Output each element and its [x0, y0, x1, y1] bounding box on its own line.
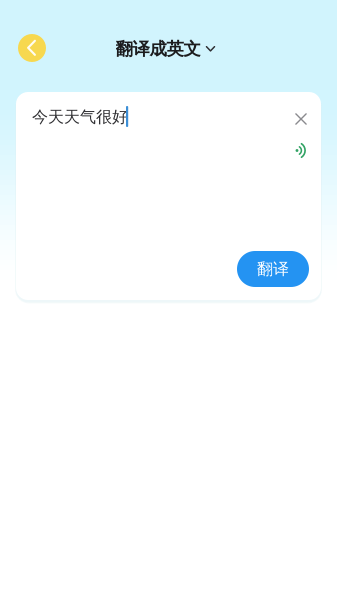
- button[interactable]: Speak: [290, 139, 314, 163]
- button[interactable]: 翻译: [237, 251, 309, 287]
- staticText: 翻译: [257, 259, 289, 279]
- staticText: 翻译成英文: [115, 38, 200, 60]
- button[interactable]: 今天天气很好: [32, 107, 282, 237]
- button[interactable]: Back: [18, 34, 46, 62]
- button[interactable]: 翻译成英文: [109, 34, 221, 64]
- staticText: 今天天气很好: [32, 107, 128, 127]
- button[interactable]: Clear: [289, 107, 313, 131]
